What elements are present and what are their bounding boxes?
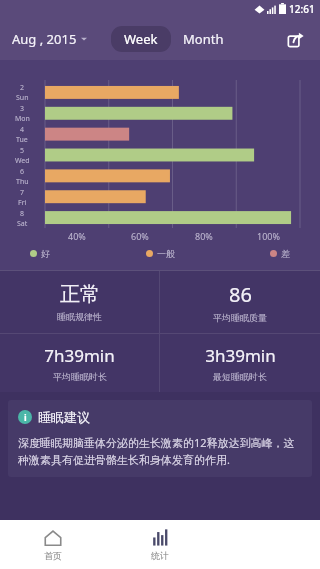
button[interactable]: 统计	[106, 520, 213, 569]
staticText: Wed	[15, 156, 30, 166]
button[interactable]: 正常	[0, 271, 159, 333]
staticText: Sun	[16, 93, 29, 103]
staticText: 8	[20, 209, 25, 219]
staticText: 好	[41, 248, 50, 259]
staticText: Mon	[15, 114, 30, 124]
staticText: 一般	[157, 248, 175, 259]
staticText: 6	[20, 167, 25, 177]
staticText: 睡眠建议	[38, 409, 90, 425]
staticText: 7h39min	[44, 344, 115, 367]
staticText: 3	[20, 104, 25, 114]
staticText: 最短睡眠时长	[213, 371, 267, 382]
staticText: Sat	[17, 219, 28, 229]
staticText: 睡眠规律性	[57, 311, 102, 322]
staticText: Tue	[16, 135, 28, 145]
staticText: 统计	[151, 550, 169, 561]
staticText: 深度睡眠期脑垂体分泌的生长激素的12释放达到高峰，这种激素具有促进骨骼生长和身体…	[18, 435, 302, 468]
staticText: 86	[229, 281, 252, 308]
staticText: 差	[281, 248, 290, 259]
staticText: Aug , 2015	[12, 30, 77, 48]
button[interactable]: Share	[280, 24, 310, 54]
staticText: 12:61	[289, 2, 315, 16]
staticText: 3h39min	[205, 344, 276, 367]
staticText: Fri	[18, 198, 27, 208]
button[interactable]: i	[8, 400, 312, 477]
staticText: 首页	[44, 550, 62, 561]
button[interactable]: 86	[160, 271, 320, 333]
staticText: 4	[20, 125, 25, 135]
staticText: i	[24, 411, 27, 423]
staticText: 平均睡眠质量	[213, 312, 267, 323]
staticText: 5	[20, 146, 25, 156]
button[interactable]: 3h39min	[160, 334, 320, 392]
staticText: 正常	[60, 282, 100, 307]
button[interactable]: 首页	[0, 520, 106, 569]
staticText: 7	[20, 188, 25, 198]
staticText: 40%	[68, 230, 86, 242]
staticText: 80%	[195, 230, 213, 242]
staticText: 2	[20, 83, 25, 93]
staticText: 100%	[257, 230, 280, 242]
staticText: Week	[124, 30, 158, 48]
button[interactable]: Week	[111, 26, 171, 52]
staticText: Thu	[16, 177, 29, 187]
staticText: 平均睡眠时长	[53, 371, 107, 382]
staticText: 60%	[131, 230, 149, 242]
button[interactable]: Aug , 2015	[10, 26, 89, 52]
button[interactable]: Month	[177, 26, 230, 52]
staticText: Month	[183, 30, 224, 48]
button[interactable]: 7h39min	[0, 334, 159, 392]
